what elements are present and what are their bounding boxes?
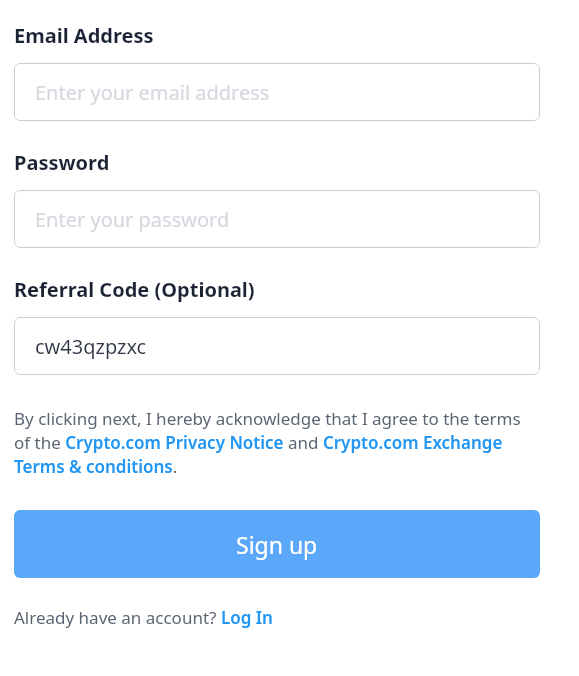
staticText: Enter your password [35,206,230,233]
staticText: Already have an account? [14,606,221,629]
staticText: Log In [221,606,273,629]
staticText: Password [14,149,110,176]
button[interactable]: By clicking next, I hereby acknowledge t… [14,407,540,478]
staticText: Email Address [14,22,154,49]
staticText: Enter your email address [35,79,270,106]
staticText: Referral Code (Optional) [14,276,255,303]
staticText: Sign up [236,529,318,560]
staticText: cw43qzpzxc [35,333,147,360]
staticText: By clicking next, I hereby acknowledge t… [14,407,540,478]
button[interactable]: cw43qzpzxc [14,317,540,375]
button[interactable]: Enter your email address [14,63,540,121]
button[interactable]: Sign up [14,510,540,578]
button[interactable]: Enter your password [14,190,540,248]
button[interactable]: Log In [221,606,273,629]
